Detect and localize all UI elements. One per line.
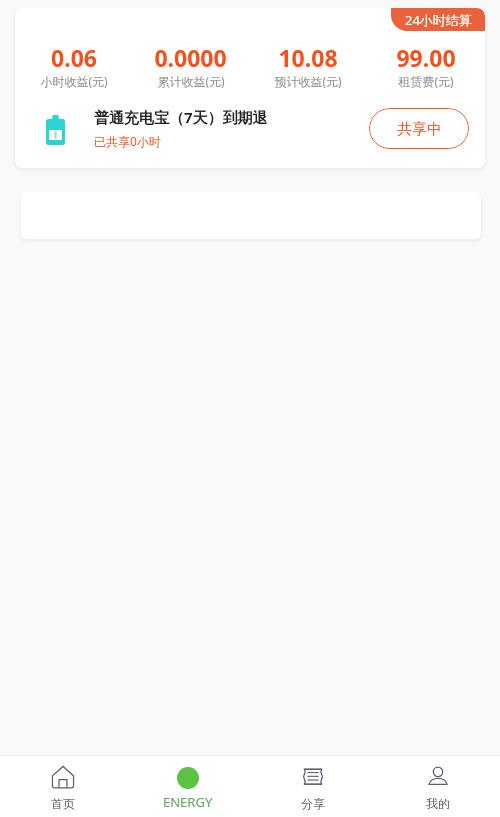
button[interactable]: 普通充电宝（7天）到期退 xyxy=(15,109,485,151)
staticText: 0.0000 xyxy=(154,42,227,73)
button[interactable]: 共享中 xyxy=(369,108,469,149)
button[interactable]: 0.0000 xyxy=(132,42,249,89)
staticText: 0.06 xyxy=(51,42,97,73)
staticText: 租赁费(元) xyxy=(398,73,454,89)
staticText: 99.00 xyxy=(396,42,456,73)
button[interactable]: ENERGY xyxy=(125,756,250,817)
button[interactable]: 99.00 xyxy=(367,42,485,89)
staticText: 我的 xyxy=(426,796,450,811)
button[interactable]: 10.08 xyxy=(249,42,367,89)
staticText: 累计收益(元) xyxy=(157,73,225,89)
staticText: 共享中 xyxy=(397,120,442,139)
staticText: 首页 xyxy=(51,796,75,811)
button[interactable]: 我的 xyxy=(375,756,500,817)
staticText: 分享 xyxy=(301,796,325,811)
button[interactable]: 0.06 xyxy=(15,42,132,89)
button[interactable]: 分享 xyxy=(250,756,375,817)
staticText: 24小时结算 xyxy=(405,11,472,29)
button[interactable]: 首页 xyxy=(0,756,125,817)
staticText: 普通充电宝（7天）到期退 xyxy=(94,107,268,127)
staticText: 10.08 xyxy=(278,42,338,73)
staticText: ENERGY xyxy=(163,793,213,811)
button[interactable]: 24小时结算 xyxy=(391,8,485,31)
staticText: 小时收益(元) xyxy=(40,73,108,89)
staticText: 预计收益(元) xyxy=(274,73,342,89)
staticText: 已共享0小时 xyxy=(94,133,161,149)
